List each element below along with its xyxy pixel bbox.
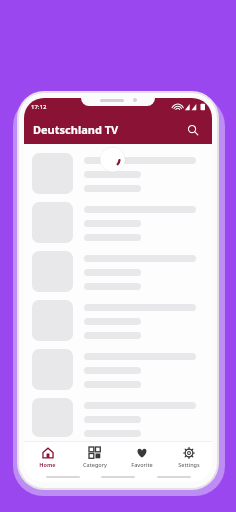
button[interactable]: Home xyxy=(24,442,71,472)
button[interactable] xyxy=(32,300,204,341)
button[interactable] xyxy=(32,251,204,292)
staticText: 17:12 xyxy=(31,103,47,111)
staticText: Settings xyxy=(178,461,200,468)
button[interactable]: Settings xyxy=(165,442,212,472)
button[interactable] xyxy=(32,349,204,390)
button[interactable]: Category xyxy=(71,442,118,472)
button[interactable] xyxy=(32,398,204,437)
staticText: Deutschland TV xyxy=(33,122,119,137)
staticText: Category xyxy=(83,461,107,468)
staticText: Home xyxy=(39,461,56,468)
button[interactable] xyxy=(32,202,204,243)
staticText: Favorite xyxy=(131,461,153,468)
button[interactable] xyxy=(32,153,204,194)
button[interactable]: Favorite xyxy=(118,442,165,472)
button[interactable]: Search xyxy=(183,120,203,140)
